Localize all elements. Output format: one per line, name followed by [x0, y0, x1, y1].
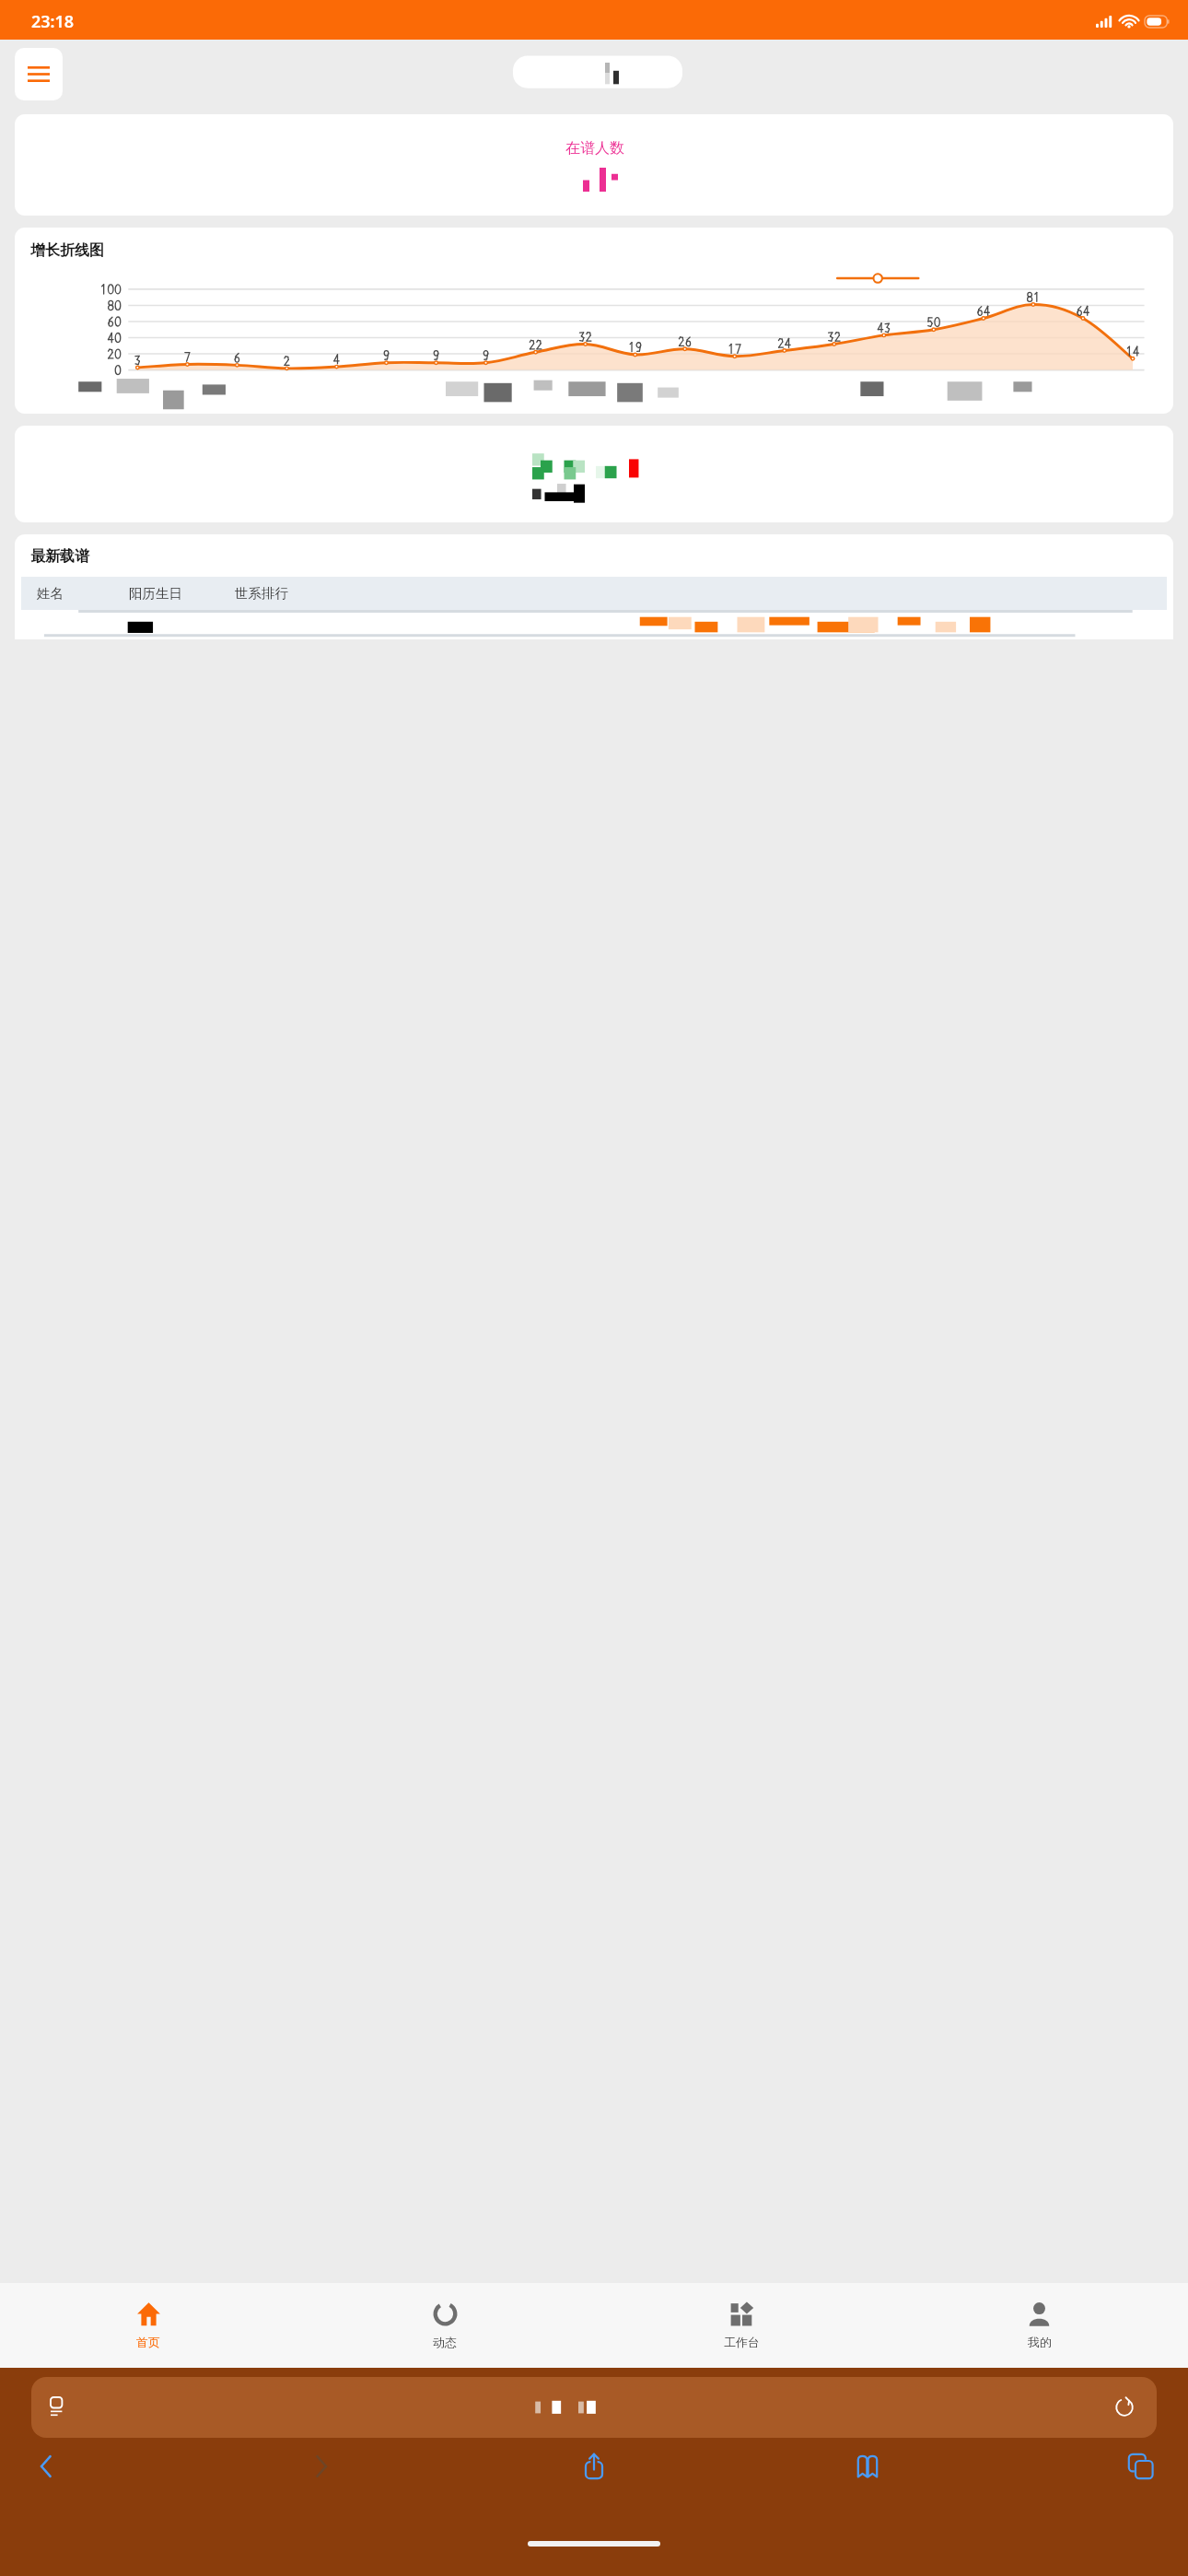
staticText: 我的	[1028, 2335, 1052, 2349]
staticText: 工作台	[724, 2335, 760, 2349]
button[interactable]: Tabs	[1107, 2447, 1175, 2504]
staticText: 最新载谱	[30, 547, 89, 566]
button[interactable]: Menu	[15, 48, 63, 100]
button[interactable]: Bookmarks	[833, 2447, 902, 2504]
button[interactable]: Address	[31, 2377, 1157, 2438]
other: Reload	[1114, 2397, 1135, 2418]
staticText: 阳历生日	[129, 585, 235, 602]
staticText: 23:18	[31, 10, 75, 33]
button[interactable]: 动态	[297, 2283, 593, 2368]
button[interactable]: Forward	[286, 2447, 355, 2504]
staticText: 世系排行	[235, 585, 288, 602]
button[interactable]: Back	[13, 2447, 81, 2504]
button[interactable]: 工作台	[593, 2283, 891, 2368]
staticText: 增长折线图	[30, 241, 104, 260]
staticText: 姓名	[37, 585, 129, 602]
button[interactable]: 首页	[0, 2283, 297, 2368]
other: Reader	[51, 2397, 69, 2418]
button[interactable]: Share	[560, 2447, 628, 2504]
staticText: 首页	[136, 2335, 160, 2349]
button[interactable]: 我的	[891, 2283, 1188, 2368]
staticText: 动态	[433, 2335, 457, 2349]
staticText: 在谱人数	[565, 139, 624, 158]
